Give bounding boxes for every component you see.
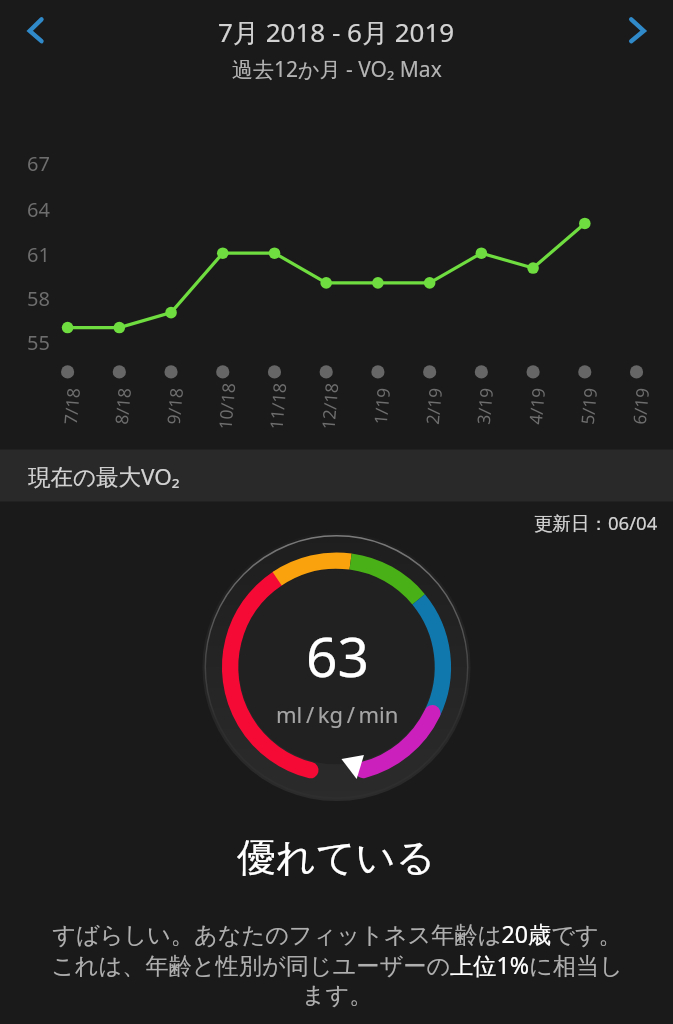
staticText: ml / kg / min (276, 699, 399, 729)
staticText: 63 (306, 618, 369, 693)
staticText: 12/18 (315, 381, 343, 430)
staticText: 61 (27, 241, 50, 268)
staticText: 4/19 (523, 386, 550, 425)
staticText: 9/18 (161, 386, 188, 425)
staticText: 8/18 (109, 386, 136, 425)
staticText: 55 (27, 329, 50, 356)
staticText: 67 (27, 150, 50, 177)
staticText: 64 (27, 196, 50, 223)
staticText: 現在の最大VO₂ (28, 461, 180, 492)
button[interactable]: Current VO2 max 63 ml per kg per min (203, 533, 471, 801)
staticText: 過去12か月 - VO₂ Max (232, 55, 442, 84)
staticText: すばらしい。あなたのフィットネス年齢は20歳です。 これは、年齢と性別が同じユー… (37, 918, 637, 1010)
button[interactable]: Previous period (11, 6, 60, 55)
staticText: 1/19 (368, 386, 395, 425)
staticText: 58 (27, 285, 50, 312)
staticText: 7月 2018 - 6月 2019 (218, 14, 455, 50)
staticText: 更新日：06/04 (534, 510, 658, 535)
staticText: 11/18 (263, 381, 291, 430)
staticText: 6/19 (627, 386, 654, 425)
staticText: 7/18 (58, 386, 85, 425)
button[interactable]: Next period (612, 6, 661, 55)
staticText: 2/19 (420, 386, 447, 425)
staticText: 優れている (237, 833, 436, 882)
staticText: 3/19 (471, 386, 498, 425)
staticText: 5/19 (575, 386, 602, 425)
button[interactable]: 現在の最大VO₂ (0, 450, 673, 502)
staticText: 10/18 (212, 381, 240, 430)
